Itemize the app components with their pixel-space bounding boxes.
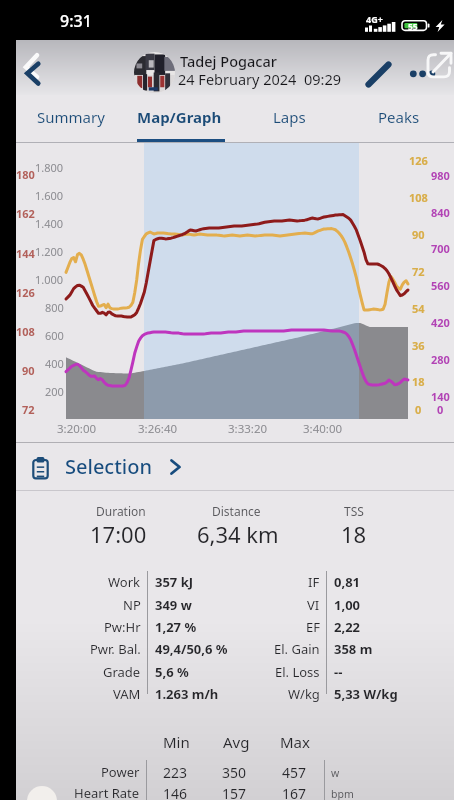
- staticText: 162: [16, 206, 35, 221]
- button[interactable]: Back: [16, 47, 58, 89]
- staticText: 357 kJ: [155, 573, 194, 591]
- staticText: 36: [412, 338, 425, 353]
- staticText: 157: [222, 784, 247, 800]
- staticText: Pw:Hr: [104, 618, 141, 636]
- staticText: 840: [431, 205, 450, 220]
- staticText: 18: [341, 519, 367, 549]
- staticText: 140: [431, 389, 450, 404]
- staticText: Selection: [65, 453, 152, 480]
- staticText: 1.800: [35, 160, 64, 175]
- staticText: Grade: [103, 663, 141, 681]
- staticText: w: [331, 766, 340, 780]
- staticText: Peaks: [378, 107, 420, 127]
- staticText: 3:26:40: [138, 421, 178, 437]
- staticText: 108: [409, 190, 428, 205]
- staticText: VI: [307, 596, 320, 614]
- staticText: 108: [16, 324, 35, 339]
- staticText: 0: [415, 402, 422, 417]
- staticText: Min: [163, 732, 190, 752]
- staticText: Power: [101, 763, 140, 781]
- staticText: 1,27 %: [155, 618, 197, 636]
- staticText: 560: [431, 278, 450, 293]
- staticText: Summary: [37, 107, 105, 127]
- staticText: 126: [409, 153, 428, 168]
- staticText: 700: [431, 241, 450, 256]
- staticText: EF: [306, 618, 320, 636]
- staticText: 54: [412, 301, 425, 316]
- staticText: 0: [437, 402, 444, 417]
- staticText: 280: [431, 352, 450, 367]
- staticText: 400: [45, 356, 64, 371]
- staticText: 200: [45, 384, 64, 399]
- staticText: 1.400: [35, 216, 64, 231]
- button[interactable]: Edit: [363, 58, 393, 88]
- staticText: 420: [431, 315, 450, 330]
- staticText: 6,34 km: [197, 519, 279, 549]
- staticText: 0,81: [334, 573, 361, 591]
- staticText: 49,4/50,6 %: [155, 640, 228, 658]
- button[interactable]: Summary: [16, 95, 125, 144]
- staticText: 90: [412, 227, 425, 242]
- staticText: 358 m: [334, 640, 373, 658]
- staticText: NP: [123, 596, 141, 614]
- staticText: 1,00: [334, 596, 361, 614]
- button[interactable]: More options: [406, 62, 438, 86]
- button[interactable]: Peaks: [344, 95, 454, 144]
- staticText: 4G+: [366, 13, 383, 25]
- staticText: --: [334, 663, 343, 681]
- staticText: 5,6 %: [155, 663, 189, 681]
- staticText: Duration: [96, 503, 146, 519]
- staticText: bpm: [331, 787, 354, 800]
- staticText: 457: [282, 763, 307, 782]
- staticText: 90: [22, 363, 35, 378]
- staticText: Max: [280, 732, 310, 752]
- staticText: VAM: [113, 685, 141, 703]
- staticText: El. Gain: [274, 640, 320, 658]
- staticText: 126: [16, 285, 35, 300]
- staticText: 1.000: [35, 272, 64, 287]
- button[interactable]: Map/Graph: [125, 95, 234, 144]
- staticText: 167: [282, 784, 307, 800]
- staticText: Avg: [223, 732, 250, 752]
- staticText: Heart Rate: [74, 784, 140, 800]
- staticText: 800: [45, 300, 64, 315]
- button[interactable]: Laps: [234, 95, 344, 144]
- staticText: 3:40:00: [303, 421, 343, 437]
- staticText: 1.200: [35, 244, 64, 259]
- staticText: 1.600: [35, 188, 64, 203]
- staticText: 144: [16, 246, 35, 261]
- staticText: El. Loss: [275, 663, 320, 681]
- staticText: Distance: [212, 503, 261, 519]
- staticText: 17:00: [90, 519, 147, 549]
- staticText: Pwr. Bal.: [90, 640, 141, 658]
- staticText: 5,33 W/kg: [334, 685, 398, 703]
- button[interactable]: Open in new window: [424, 50, 454, 80]
- staticText: Laps: [273, 107, 306, 127]
- staticText: 146: [163, 784, 188, 800]
- staticText: 72: [412, 264, 425, 279]
- staticText: 349 w: [155, 596, 192, 614]
- staticText: Work: [108, 573, 141, 591]
- staticText: 2,22: [334, 618, 361, 636]
- staticText: 980: [431, 168, 450, 183]
- staticText: 18: [412, 374, 425, 389]
- staticText: 9:31: [60, 10, 92, 32]
- staticText: 09:29: [304, 69, 342, 89]
- staticText: 55: [408, 21, 418, 33]
- staticText: 3:33:20: [228, 421, 268, 437]
- staticText: 24 February 2024: [178, 69, 297, 89]
- staticText: TSS: [344, 503, 364, 519]
- staticText: 72: [22, 402, 35, 417]
- staticText: Tadej Pogacar: [180, 51, 277, 71]
- staticText: 1.263 m/h: [155, 685, 219, 703]
- staticText: 180: [16, 167, 35, 182]
- staticText: 350: [222, 763, 247, 782]
- staticText: IF: [308, 573, 320, 591]
- staticText: Map/Graph: [137, 107, 222, 127]
- staticText: 223: [163, 763, 188, 782]
- staticText: W/kg: [288, 685, 320, 703]
- staticText: 3:20:00: [57, 421, 97, 437]
- staticText: 600: [45, 328, 64, 343]
- button[interactable]: Selection: [16, 443, 454, 490]
